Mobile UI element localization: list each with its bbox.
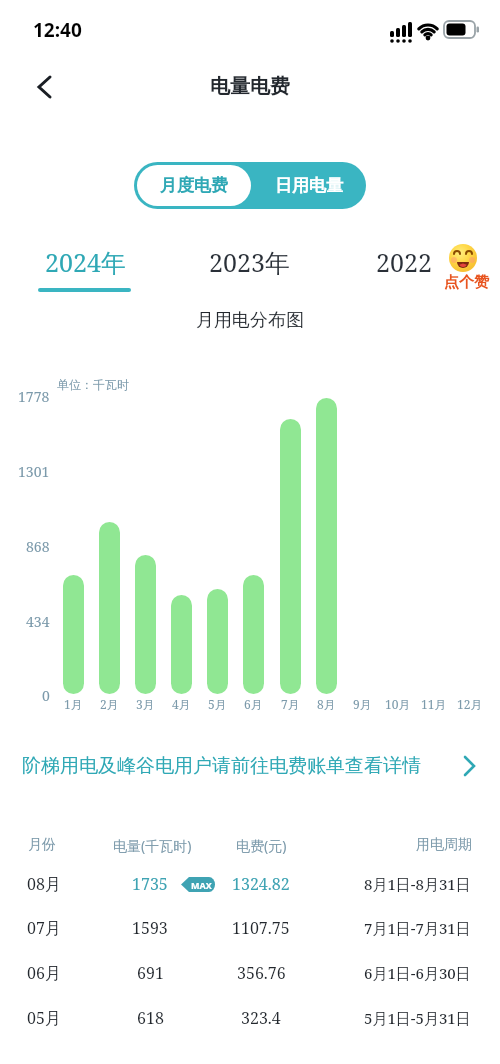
staticText: 月用电分布图 [196, 309, 304, 332]
staticText: 618 [137, 1007, 164, 1029]
staticText: 3月 [136, 696, 155, 712]
staticText: 323.4 [241, 1007, 281, 1029]
staticText: 1301 [18, 462, 50, 481]
button[interactable] [30, 72, 60, 102]
staticText: 月份 [28, 836, 56, 854]
staticText: 10月 [385, 696, 411, 712]
staticText: 05月 [27, 1007, 61, 1029]
button[interactable] [0, 951, 500, 995]
staticText: 5月1日-5月31日 [364, 1008, 471, 1028]
staticText: 阶梯用电及峰谷电用户请前往电费账单查看详情 [22, 754, 421, 778]
staticText: 2022 [376, 245, 432, 279]
staticText: 2023年 [209, 245, 290, 279]
staticText: 434 [26, 612, 50, 631]
button[interactable]: 2023年 [194, 240, 304, 284]
staticText: 9月 [353, 696, 372, 712]
button[interactable]: 2024年 [30, 240, 140, 284]
button[interactable]: 日用电量 [251, 162, 366, 209]
staticText: 356.76 [237, 962, 286, 984]
button[interactable]: 2022 [349, 240, 459, 284]
button[interactable] [0, 996, 500, 1040]
staticText: 点个赞 [444, 273, 489, 292]
button[interactable]: 月度电费 [137, 165, 251, 206]
staticText: 1735 [132, 873, 168, 895]
staticText: 电量(千瓦时) [113, 836, 192, 855]
staticText: 1593 [132, 917, 168, 939]
staticText: 8月 [317, 696, 336, 712]
staticText: MAX [191, 879, 212, 891]
staticText: 08月 [27, 873, 61, 895]
staticText: 1778 [18, 387, 50, 406]
button[interactable] [0, 862, 500, 906]
staticText: 4月 [172, 696, 191, 712]
staticText: 电量电费 [210, 74, 290, 99]
staticText: 07月 [27, 917, 61, 939]
staticText: 7月 [281, 696, 300, 712]
staticText: 691 [137, 962, 164, 984]
staticText: 5月 [208, 696, 227, 712]
staticText: 电费(元) [236, 836, 287, 855]
staticText: 11月 [421, 696, 447, 712]
staticText: 6月1日-6月30日 [364, 963, 471, 983]
button[interactable] [0, 906, 500, 950]
staticText: 单位：千瓦时 [57, 377, 129, 392]
button[interactable]: 阶梯用电及峰谷电用户请前往电费账单查看详情 [0, 748, 500, 784]
staticText: 1107.75 [232, 917, 290, 939]
staticText: 06月 [27, 962, 61, 984]
staticText: 7月1日-7月31日 [364, 918, 471, 938]
staticText: 868 [26, 537, 50, 556]
staticText: 2024年 [45, 245, 126, 279]
staticText: 1月 [64, 696, 83, 712]
staticText: 0 [42, 686, 50, 705]
staticText: 1324.82 [232, 873, 290, 895]
staticText: 用电周期 [416, 836, 472, 854]
staticText: 6月 [244, 696, 263, 712]
staticText: 12月 [457, 696, 483, 712]
staticText: 12:40 [33, 17, 82, 43]
staticText: 日用电量 [275, 175, 343, 196]
staticText: 月度电费 [160, 175, 228, 196]
staticText: 8月1日-8月31日 [364, 874, 471, 894]
staticText: 2月 [100, 696, 119, 712]
